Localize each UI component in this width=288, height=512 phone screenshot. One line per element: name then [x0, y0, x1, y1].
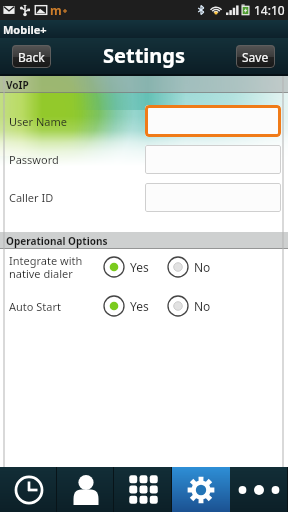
staticText: No [194, 259, 211, 275]
staticText: 14:10 [254, 2, 285, 18]
button[interactable]: Save [236, 45, 275, 68]
staticText: No [194, 298, 211, 314]
staticText: Yes [130, 298, 149, 314]
staticText: Auto Start [9, 299, 62, 314]
button[interactable]: Keypad [114, 467, 172, 512]
staticText: Password [9, 152, 59, 167]
button[interactable]: Yes [103, 256, 149, 278]
button[interactable]: More options [230, 467, 288, 512]
button[interactable]: No [167, 295, 211, 317]
staticText: Integrate with native dialer [9, 253, 83, 281]
button[interactable] [145, 145, 281, 174]
staticText: User Name [9, 114, 67, 129]
button[interactable] [145, 183, 281, 212]
button[interactable]: Back [12, 45, 51, 68]
staticText: Operational Options [6, 234, 108, 248]
button[interactable]: Contacts [57, 467, 114, 512]
button[interactable]: Recent calls [0, 467, 57, 512]
button[interactable]: Settings [172, 467, 230, 512]
staticText: Mobile+ [3, 22, 47, 37]
button[interactable] [145, 105, 281, 137]
staticText: Back [18, 49, 45, 65]
staticText: VoIP [6, 78, 29, 92]
staticText: Caller ID [9, 190, 54, 205]
staticText: Settings [103, 42, 185, 69]
staticText: m [50, 2, 62, 18]
staticText: Yes [130, 259, 149, 275]
staticText: Save [242, 49, 269, 65]
button[interactable]: Yes [103, 295, 149, 317]
button[interactable]: No [167, 256, 211, 278]
